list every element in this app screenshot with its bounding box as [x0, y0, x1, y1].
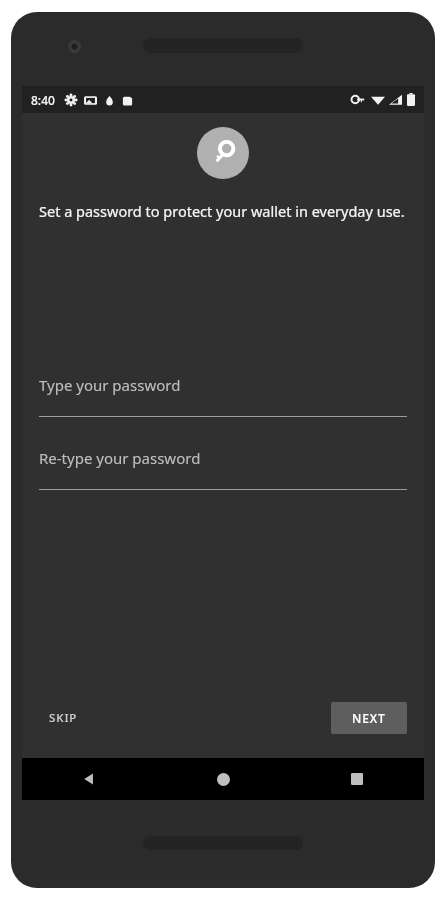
other: Password key — [197, 127, 249, 179]
button[interactable]: NEXT — [331, 702, 407, 734]
staticText: 8:40 — [31, 92, 55, 108]
staticText: NEXT — [352, 710, 386, 726]
button[interactable]: Recent apps — [290, 758, 424, 800]
button[interactable]: Re-type your password — [22, 448, 424, 490]
button[interactable]: Home — [156, 758, 290, 800]
staticText: Type your password — [39, 375, 181, 395]
button[interactable]: SKIP — [39, 702, 88, 734]
staticText: Re-type your password — [39, 448, 201, 468]
staticText: Set a password to protect your wallet in… — [39, 201, 407, 221]
button[interactable]: Back — [22, 758, 156, 800]
button[interactable]: Type your password — [22, 375, 424, 417]
staticText: SKIP — [49, 710, 78, 726]
